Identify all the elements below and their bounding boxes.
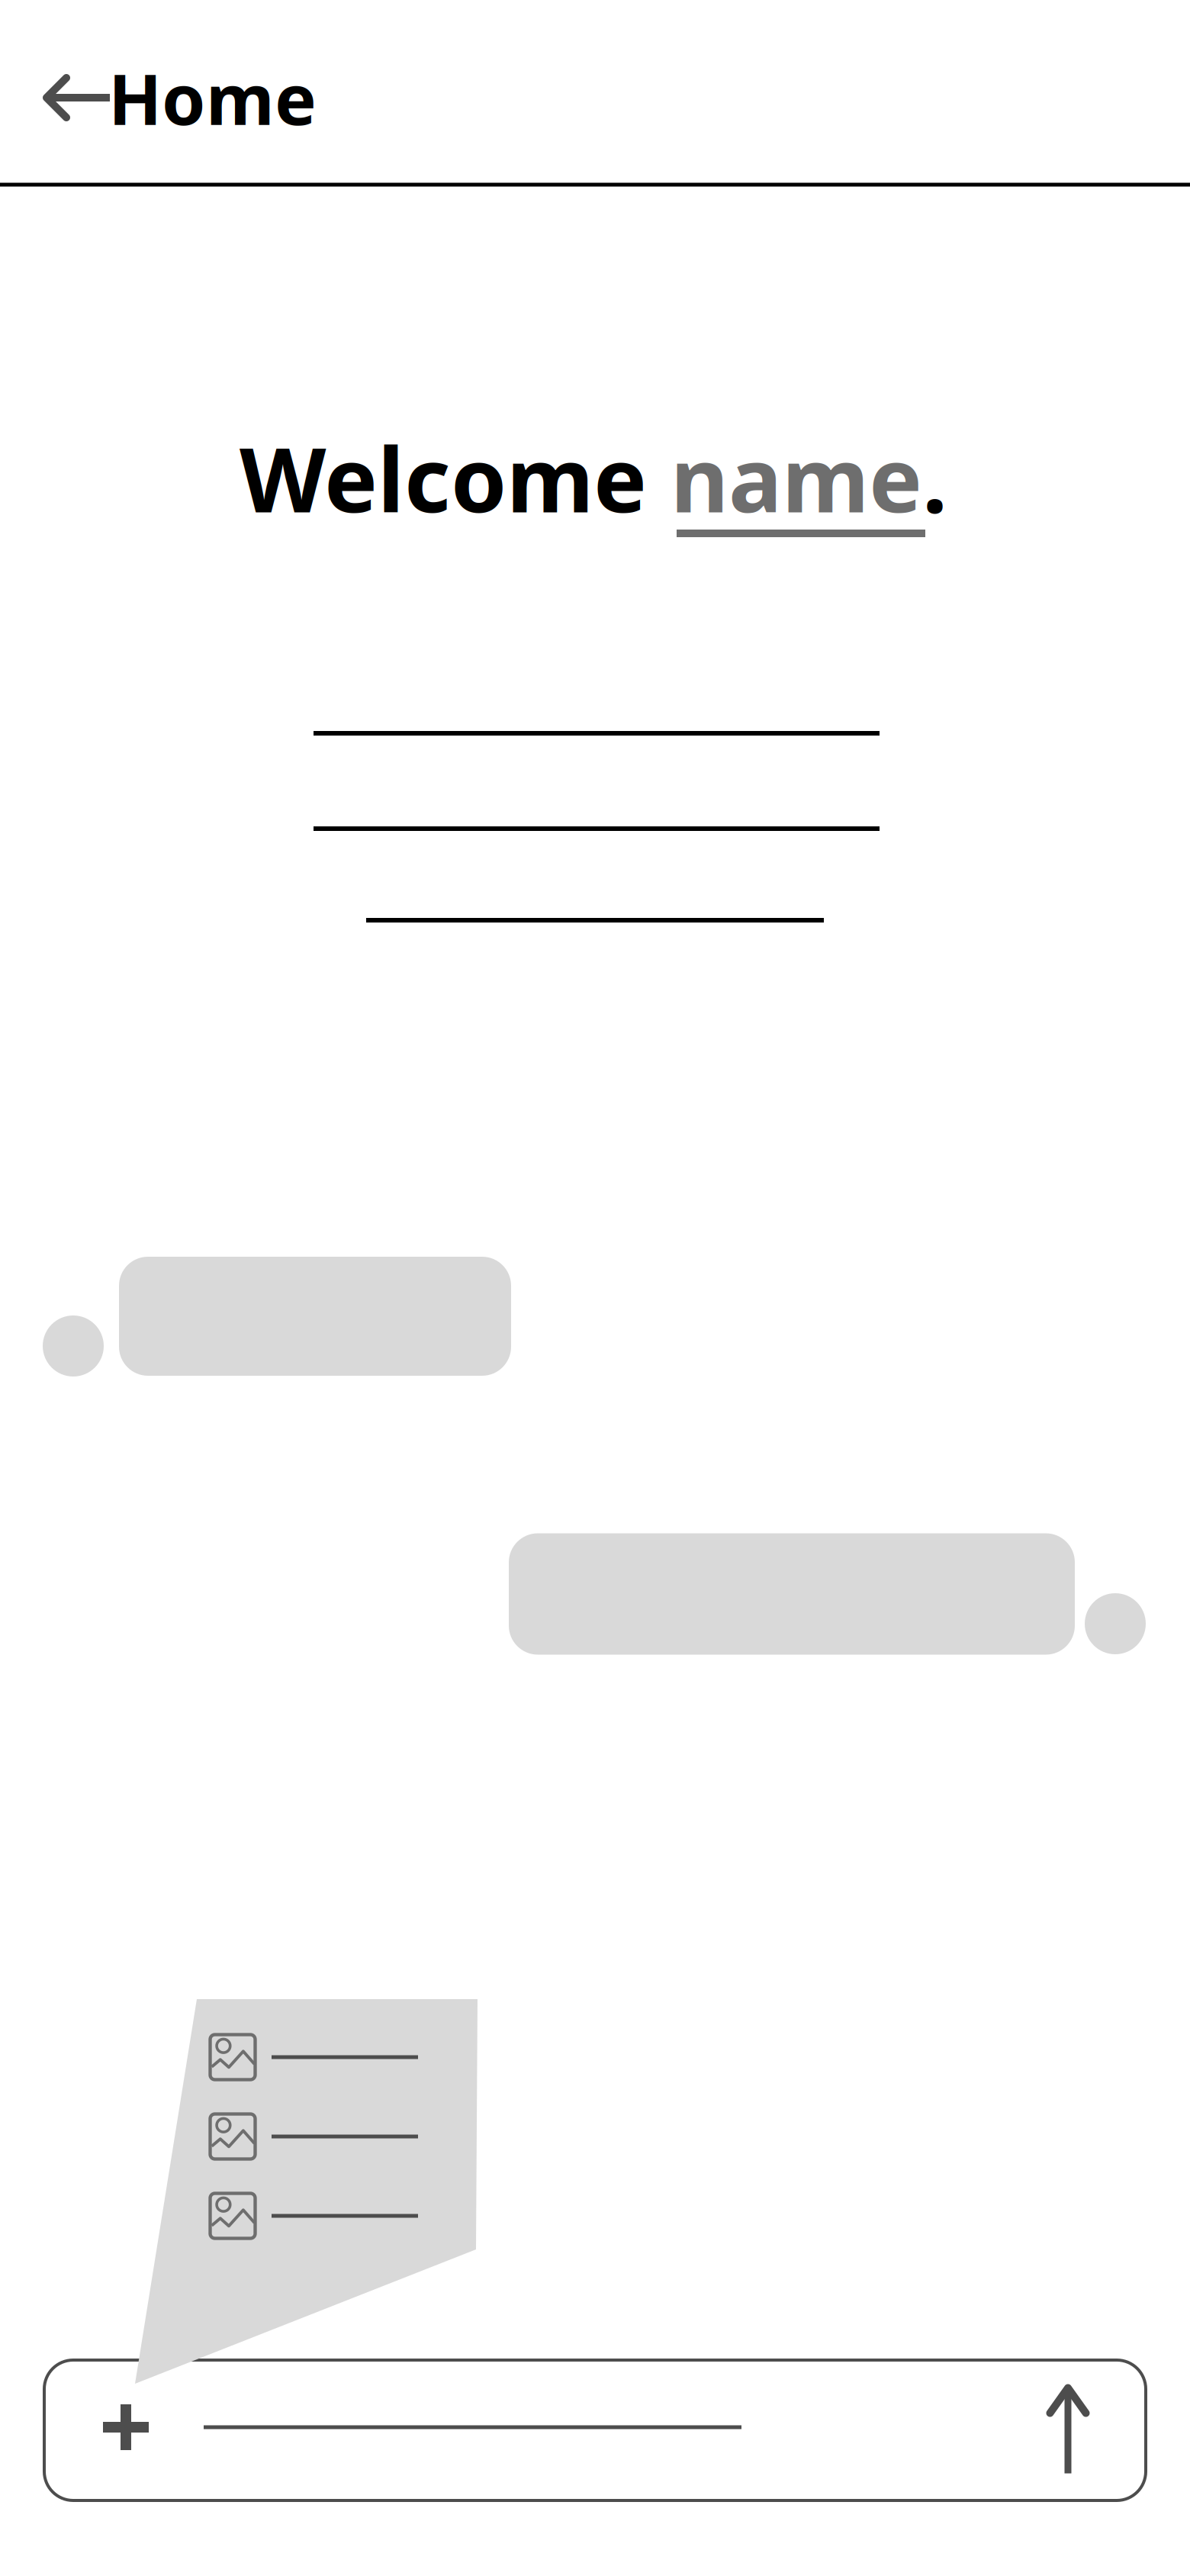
staticText: name (671, 418, 922, 537)
staticText: Home (108, 51, 317, 144)
button[interactable]: Add attachment (80, 2381, 172, 2473)
staticText: Welcome (240, 418, 671, 537)
button[interactable]: Attach photo (209, 2184, 420, 2248)
button[interactable]: Message (204, 2370, 1012, 2484)
button[interactable]: Attach photo (209, 2104, 420, 2169)
button[interactable]: Attach photo (209, 2025, 420, 2089)
staticText: . (922, 418, 947, 537)
button[interactable]: Send (1022, 2369, 1114, 2488)
button[interactable]: Home (43, 40, 371, 155)
